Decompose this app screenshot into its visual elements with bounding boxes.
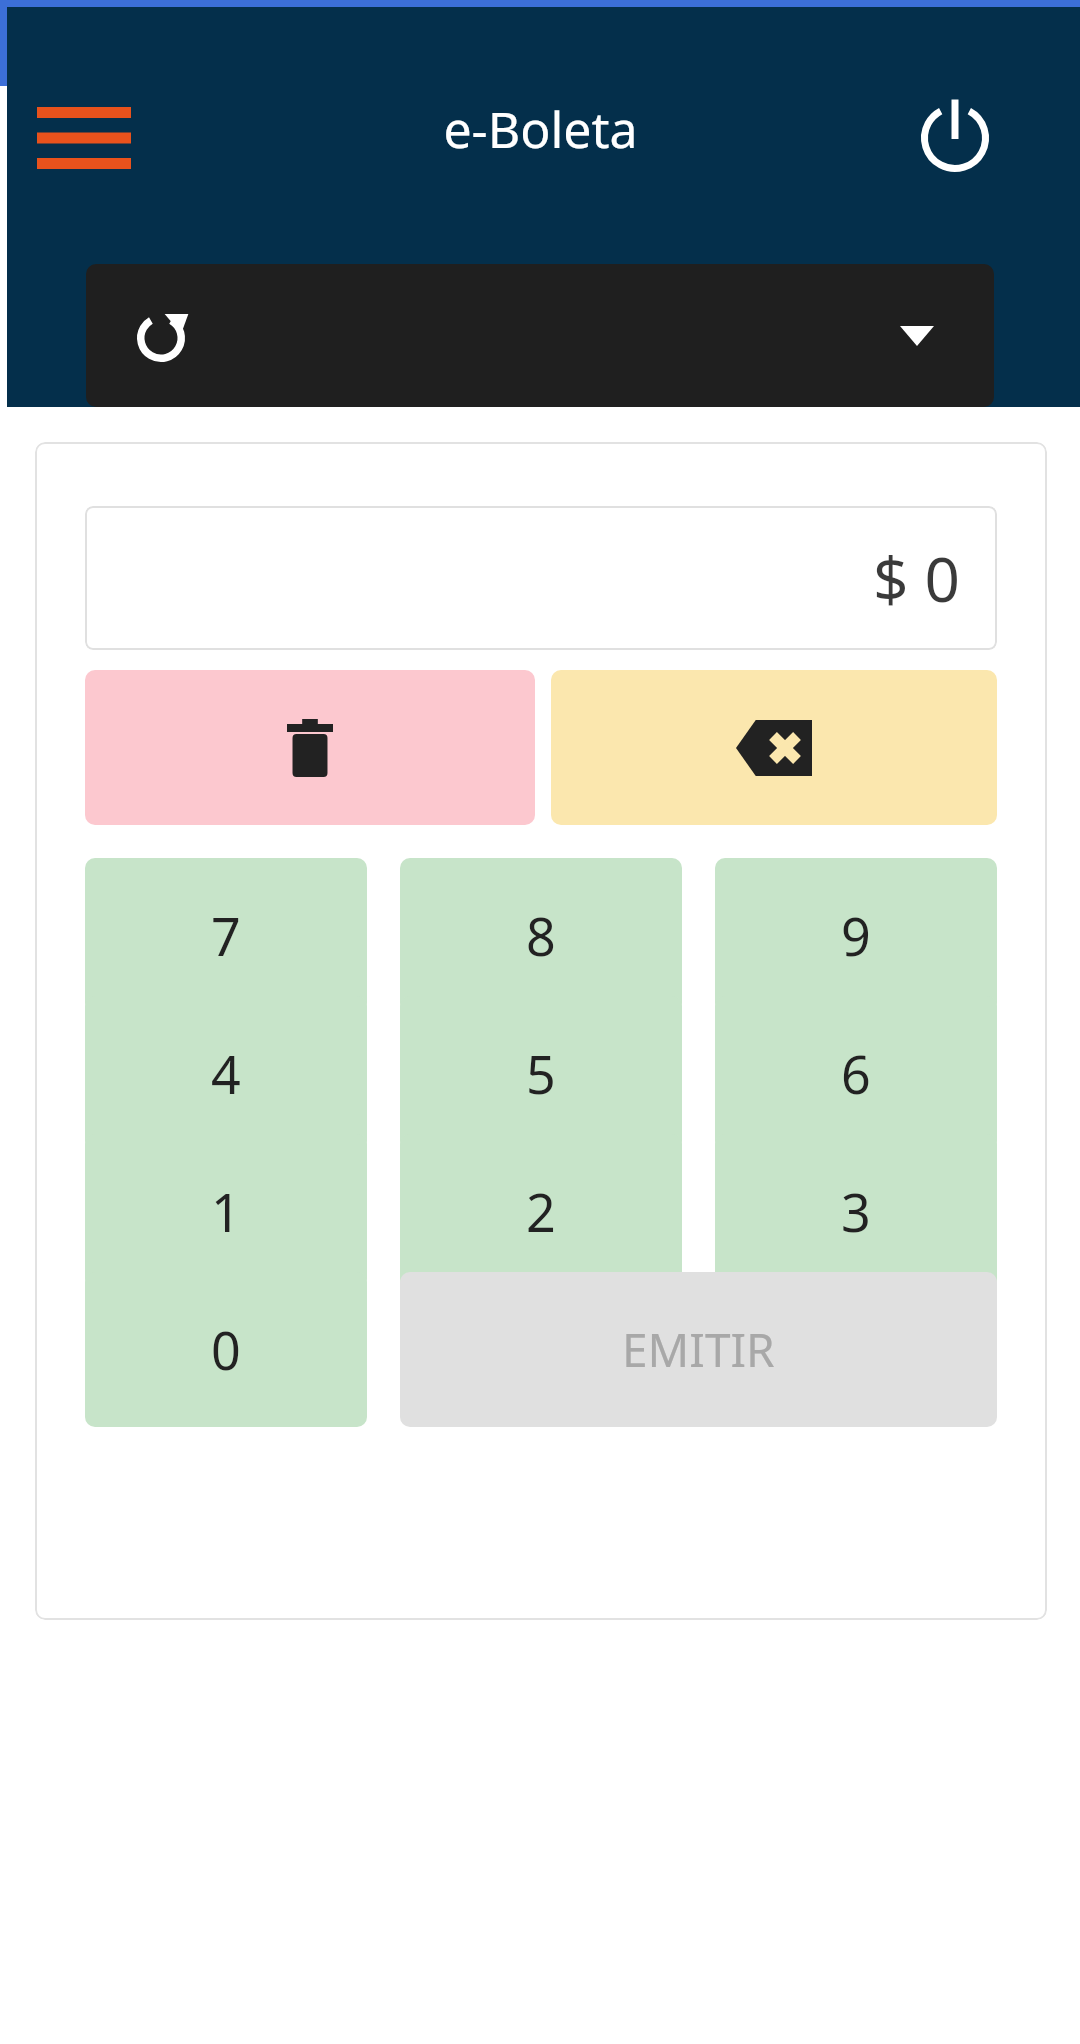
button[interactable]: 6 xyxy=(715,996,997,1151)
staticText: 4 xyxy=(211,1038,241,1109)
button[interactable]: 8 xyxy=(400,858,682,1013)
button[interactable]: 7 xyxy=(85,858,367,1013)
staticText: 6 xyxy=(841,1038,871,1109)
staticText: EMITIR xyxy=(622,1318,775,1381)
button[interactable]: 9 xyxy=(715,858,997,1013)
button[interactable]: Menu xyxy=(20,88,148,188)
staticText: e-Boleta xyxy=(443,95,638,163)
button[interactable]: EMITIR xyxy=(400,1272,997,1427)
button[interactable]: 3 xyxy=(715,1134,997,1289)
staticText: 1 xyxy=(211,1176,241,1247)
staticText: 9 xyxy=(841,900,871,971)
button[interactable]: 5 xyxy=(400,996,682,1151)
staticText: 0 xyxy=(211,1314,241,1385)
button[interactable]: $ 0 xyxy=(85,506,997,650)
staticText: 8 xyxy=(526,900,556,971)
button[interactable]: 1 xyxy=(85,1134,367,1289)
button[interactable]: Backspace xyxy=(551,670,997,825)
staticText: $ 0 xyxy=(873,536,961,620)
staticText: 2 xyxy=(526,1176,556,1247)
button[interactable]: Clear xyxy=(85,670,535,825)
staticText: 3 xyxy=(841,1176,871,1247)
button[interactable]: Power / Logout xyxy=(895,75,1015,195)
button[interactable]: 2 xyxy=(400,1134,682,1289)
button[interactable]: Select device xyxy=(86,264,994,407)
staticText: 7 xyxy=(211,900,241,971)
button[interactable]: 0 xyxy=(85,1272,367,1427)
button[interactable]: 4 xyxy=(85,996,367,1151)
staticText: 5 xyxy=(526,1038,556,1109)
